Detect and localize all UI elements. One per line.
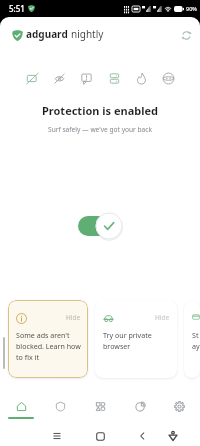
button[interactable]: Protection enabled toggle (77, 211, 123, 241)
button[interactable]: Annoyances blocked (77, 69, 95, 87)
staticText: 5:51 (9, 3, 25, 14)
button[interactable]: Stealth mode (159, 69, 177, 87)
staticText: Surf safely — we've got your back (0, 125, 200, 134)
staticText: adguard (26, 27, 68, 41)
button[interactable]: Hide keyboard (164, 427, 182, 445)
staticText: Some ads aren't blocked. Learn how to fi… (16, 330, 84, 362)
button[interactable]: Check for updates (176, 25, 196, 45)
button[interactable]: Stay protected (184, 300, 200, 378)
button[interactable]: Hide (8, 300, 88, 378)
staticText: Try our private browser (103, 330, 173, 351)
button[interactable]: Firewall (132, 69, 150, 87)
staticText: Hide (155, 313, 170, 322)
button[interactable]: Protection (41, 396, 79, 421)
button[interactable]: DNS requests (105, 69, 123, 87)
button[interactable]: Settings (160, 396, 198, 421)
button[interactable]: Statistics (121, 396, 159, 421)
button[interactable]: Hide (95, 300, 177, 378)
button[interactable]: Menu (48, 427, 66, 445)
staticText: 90% (186, 5, 197, 12)
button[interactable]: Apps (81, 396, 119, 421)
button[interactable]: Trackers blocked (50, 69, 68, 87)
staticText: Protection is enabled (0, 103, 200, 118)
button[interactable]: Ads blocked (23, 69, 41, 87)
staticText: Hide (66, 313, 81, 322)
button[interactable]: Home (2, 396, 40, 421)
button[interactable]: Back (133, 427, 151, 445)
button[interactable]: Recent apps (91, 427, 109, 445)
staticText: nightly (71, 27, 104, 41)
staticText: Stay protected (192, 330, 200, 351)
